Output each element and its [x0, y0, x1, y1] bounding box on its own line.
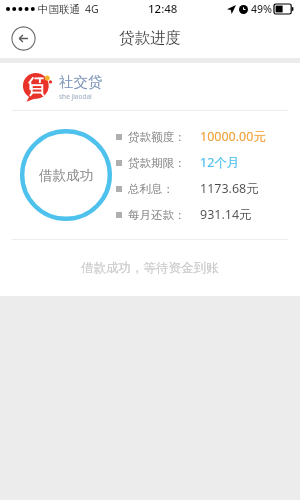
- staticText: 49%: [251, 2, 272, 16]
- staticText: 中国联通: [38, 3, 80, 16]
- staticText: 931.14元: [200, 206, 252, 223]
- staticText: 12个月: [200, 154, 240, 171]
- staticText: 1173.68元: [200, 180, 259, 197]
- button[interactable]: 社交贷: [0, 63, 300, 110]
- staticText: 社交贷: [59, 73, 103, 91]
- button[interactable]: 借款成功: [20, 129, 112, 221]
- staticText: 4G: [85, 2, 99, 16]
- staticText: 贷款额度：: [128, 130, 186, 144]
- staticText: 12:48: [148, 1, 178, 17]
- staticText: 每月还款：: [128, 208, 186, 222]
- staticText: 借款成功，等待资金到账: [81, 260, 219, 276]
- staticText: 借款成功: [39, 167, 93, 184]
- staticText: 贷款进度: [119, 28, 181, 48]
- staticText: 总利息：: [128, 182, 174, 196]
- staticText: 贷款期限：: [128, 156, 186, 170]
- button[interactable]: Back: [11, 26, 36, 51]
- staticText: she jiaodai: [59, 92, 92, 101]
- staticText: 10000.00元: [200, 128, 266, 145]
